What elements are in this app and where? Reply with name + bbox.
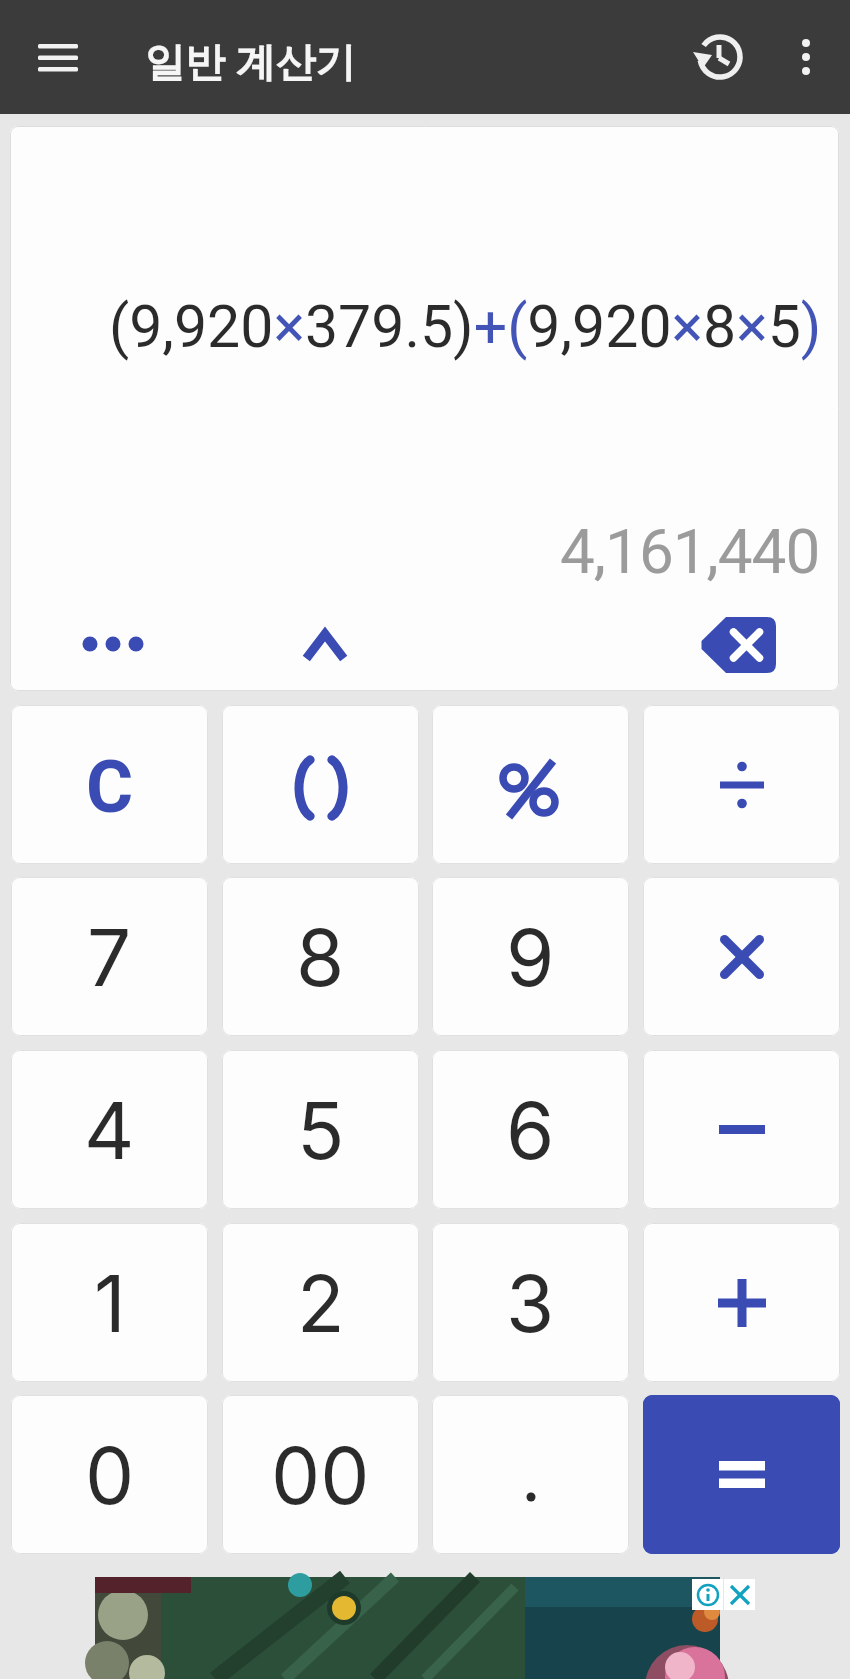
staticText: 7: [87, 910, 132, 1004]
staticText: 9: [506, 910, 555, 1004]
staticText: 4: [84, 1083, 135, 1177]
staticText: 일반 계산기: [145, 33, 356, 88]
button[interactable]: C: [11, 705, 208, 864]
staticText: 5: [297, 1083, 345, 1177]
button[interactable]: [222, 705, 419, 864]
button[interactable]: 9: [432, 877, 629, 1036]
staticText: 4,161,440: [560, 515, 820, 588]
button[interactable]: 8: [222, 877, 419, 1036]
staticText: 2: [297, 1256, 345, 1350]
button[interactable]: [643, 1050, 840, 1209]
button[interactable]: 7: [11, 877, 208, 1036]
button[interactable]: [684, 24, 750, 90]
button[interactable]: 3: [432, 1223, 629, 1382]
button[interactable]: [643, 1395, 840, 1554]
button[interactable]: 1: [11, 1223, 208, 1382]
button[interactable]: [643, 1223, 840, 1382]
button[interactable]: [681, 610, 795, 680]
button[interactable]: 0: [11, 1395, 208, 1554]
button[interactable]: [432, 1395, 629, 1554]
button[interactable]: [778, 24, 834, 90]
staticText: 8: [296, 910, 345, 1004]
button[interactable]: [20, 22, 96, 94]
button[interactable]: [95, 1577, 716, 1679]
button[interactable]: [724, 1579, 755, 1610]
button[interactable]: [280, 616, 370, 672]
button[interactable]: 6: [432, 1050, 629, 1209]
button[interactable]: 2: [222, 1223, 419, 1382]
staticText: C: [86, 745, 134, 829]
button[interactable]: [60, 618, 165, 670]
staticText: 0: [85, 1428, 135, 1522]
staticText: (9,920×379.5)+(9,920×8×5): [109, 292, 822, 361]
staticText: 6: [506, 1083, 555, 1177]
button[interactable]: [643, 705, 840, 864]
button[interactable]: 4: [11, 1050, 208, 1209]
button[interactable]: [692, 1579, 723, 1610]
button[interactable]: [432, 705, 629, 864]
staticText: 3: [506, 1256, 555, 1350]
button[interactable]: [643, 877, 840, 1036]
staticText: 1: [94, 1256, 126, 1350]
button[interactable]: 5: [222, 1050, 419, 1209]
button[interactable]: 00: [222, 1395, 419, 1554]
staticText: 00: [271, 1428, 370, 1522]
